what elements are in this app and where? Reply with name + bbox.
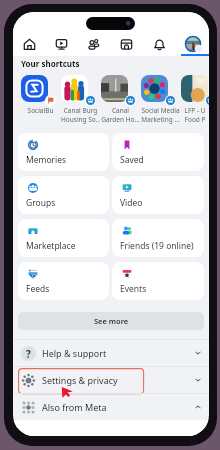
button[interactable]: Marketplace [110, 32, 143, 56]
staticText: Your shortcuts [21, 58, 80, 69]
button[interactable]: Menu [176, 32, 209, 56]
staticText: Video [120, 197, 143, 209]
button[interactable]: ? [13, 340, 209, 366]
staticText: Marketing ... [141, 115, 180, 124]
button[interactable]: LFP - U [181, 75, 209, 124]
staticText: SocialBu [21, 106, 60, 115]
staticText: Social Media [141, 106, 180, 115]
button[interactable]: Memories [18, 133, 109, 171]
staticText: Garden Ho... [101, 115, 140, 124]
button[interactable]: Friends (19 online) [112, 219, 204, 257]
staticText: LFP - U [181, 106, 209, 115]
button[interactable]: Feeds [18, 262, 109, 300]
button[interactable]: Canal [101, 75, 141, 124]
staticText: Events [120, 283, 147, 295]
staticText: Saved [120, 154, 144, 166]
staticText: Help & support [42, 347, 107, 359]
staticText: See more [94, 316, 129, 326]
staticText: Canal [101, 106, 140, 115]
staticText: Marketplace [26, 240, 76, 252]
staticText: Also from Meta [42, 401, 107, 413]
staticText: Food P [181, 115, 209, 124]
button[interactable]: Also from Meta [13, 394, 209, 420]
button[interactable]: Friends [77, 32, 110, 56]
button[interactable]: Saved [112, 133, 204, 171]
staticText: Housing So... [61, 115, 100, 124]
button[interactable]: Video [112, 176, 204, 214]
staticText: Feeds [26, 283, 50, 295]
button[interactable]: Marketplace [18, 219, 109, 257]
staticText: Canal Burg [61, 106, 100, 115]
button[interactable]: SocialBu [21, 75, 61, 115]
button[interactable]: Events [112, 262, 204, 300]
button[interactable]: Canal Burg [61, 75, 101, 124]
staticText: Groups [26, 197, 56, 209]
staticText: Memories [26, 154, 67, 166]
button[interactable]: Video [45, 32, 77, 56]
staticText: Friends (19 online) [120, 240, 194, 252]
button[interactable]: Notifications [143, 32, 176, 56]
staticText: ? [26, 347, 31, 361]
button[interactable]: Settings & privacy [13, 367, 209, 393]
button[interactable]: Groups [18, 176, 109, 214]
button[interactable]: Social Media [141, 75, 181, 124]
staticText: Settings & privacy [42, 374, 118, 386]
button[interactable]: Home [13, 32, 45, 56]
button[interactable]: See more [18, 312, 204, 330]
